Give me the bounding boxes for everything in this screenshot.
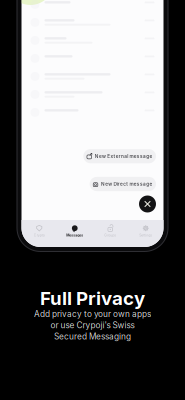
staticText: Full Privacy bbox=[40, 287, 145, 310]
staticText: Secured Messaging bbox=[54, 332, 131, 342]
button[interactable]: Close bbox=[139, 195, 156, 212]
button[interactable]: New External message bbox=[83, 149, 156, 163]
staticText: Messages bbox=[66, 233, 83, 237]
staticText: New External message bbox=[95, 153, 152, 159]
staticText: or use Crypoji's Swiss bbox=[50, 320, 134, 330]
button[interactable]: Crypto bbox=[21, 224, 57, 238]
staticText: Settings bbox=[139, 233, 152, 237]
staticText: Crypto bbox=[34, 233, 45, 237]
button[interactable]: Messages bbox=[57, 224, 92, 238]
button[interactable]: Groups bbox=[92, 224, 128, 238]
button[interactable]: New Direct message bbox=[90, 177, 156, 191]
button[interactable]: Settings bbox=[128, 224, 163, 238]
staticText: New Direct message bbox=[101, 181, 152, 187]
staticText: Add privacy to your own apps bbox=[34, 309, 151, 319]
staticText: Groups bbox=[104, 233, 116, 237]
